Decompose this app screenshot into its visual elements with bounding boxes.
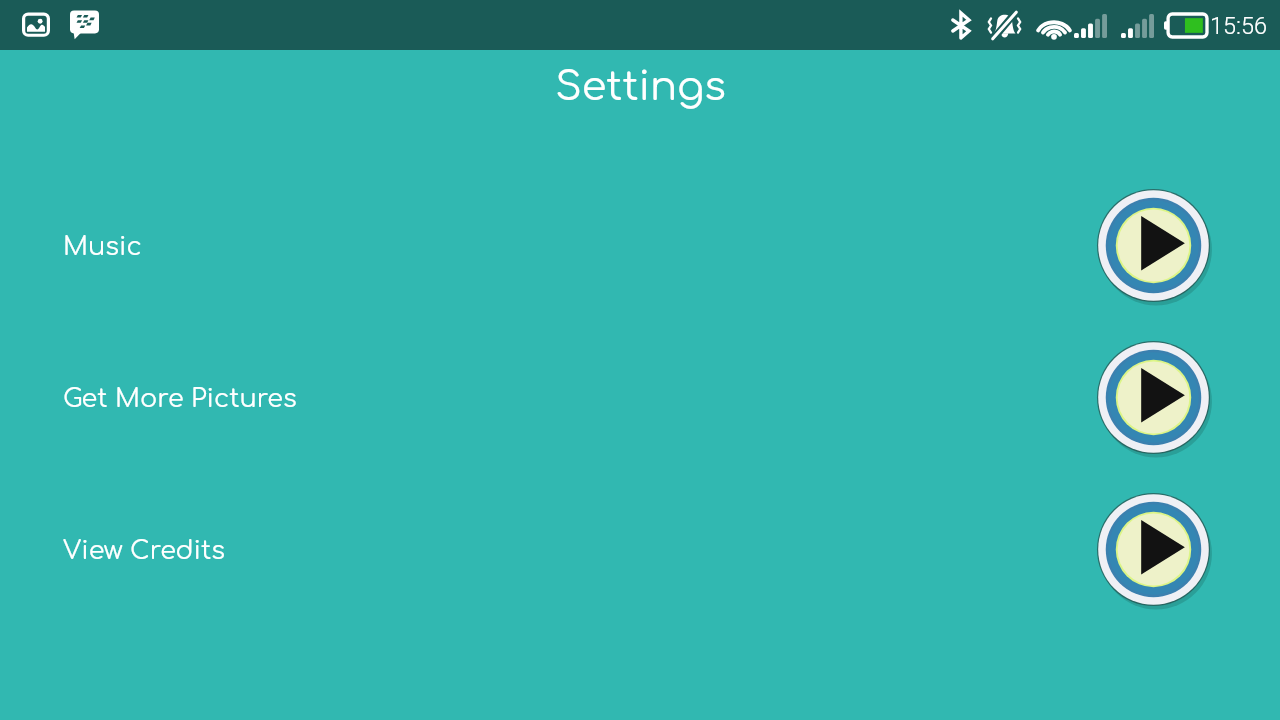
button[interactable]: Play <box>1097 493 1210 606</box>
staticText: Music <box>63 233 142 261</box>
staticText: Get More Pictures <box>63 385 297 413</box>
staticText: Settings <box>555 65 726 110</box>
staticText: 15:56 <box>1210 12 1268 40</box>
button[interactable]: Play <box>1097 189 1210 302</box>
staticText: View Credits <box>63 537 225 565</box>
button[interactable]: Music <box>0 189 1280 302</box>
button[interactable]: Get More Pictures <box>0 341 1280 454</box>
button[interactable]: Play <box>1097 341 1210 454</box>
button[interactable]: View Credits <box>0 493 1280 606</box>
